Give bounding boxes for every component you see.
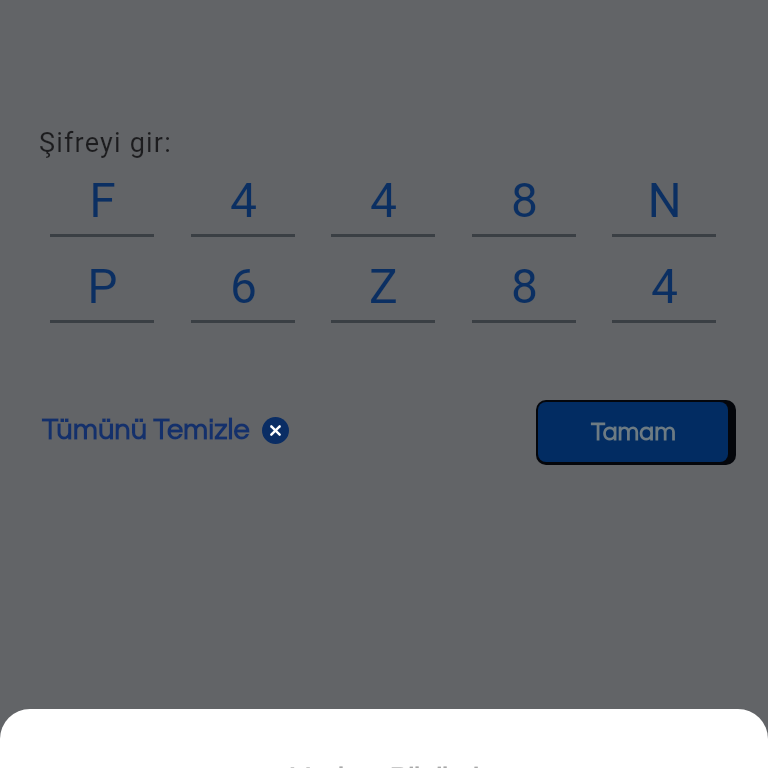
staticText: 4: [230, 172, 257, 228]
staticText: Z: [369, 258, 398, 314]
staticText: 4: [370, 172, 397, 228]
button[interactable]: 4: [331, 172, 435, 237]
button[interactable]: Tamam: [536, 400, 736, 465]
button[interactable]: P: [50, 258, 154, 323]
staticText: Tamam: [591, 419, 676, 445]
staticText: 8: [511, 258, 538, 314]
button[interactable]: F: [50, 172, 154, 237]
button[interactable]: 8: [472, 258, 576, 323]
staticText: 6: [230, 258, 257, 314]
button[interactable]: 4: [191, 172, 295, 237]
staticText: N: [647, 172, 682, 228]
button[interactable]: 8: [472, 172, 576, 237]
staticText: Şifreyi gir:: [39, 127, 172, 159]
staticText: 4: [651, 258, 678, 314]
button[interactable]: 4: [612, 258, 716, 323]
staticText: P: [87, 258, 118, 314]
button[interactable]: 6: [191, 258, 295, 323]
button[interactable]: N: [612, 172, 716, 237]
button[interactable]: Tümünü Temizle: [42, 415, 289, 445]
staticText: Modem Bilgileri: [289, 763, 480, 768]
button[interactable]: Z: [331, 258, 435, 323]
staticText: F: [89, 172, 116, 228]
other: Tümünü Temizle: [262, 417, 289, 444]
staticText: Tümünü Temizle: [42, 415, 250, 445]
staticText: 8: [511, 172, 538, 228]
